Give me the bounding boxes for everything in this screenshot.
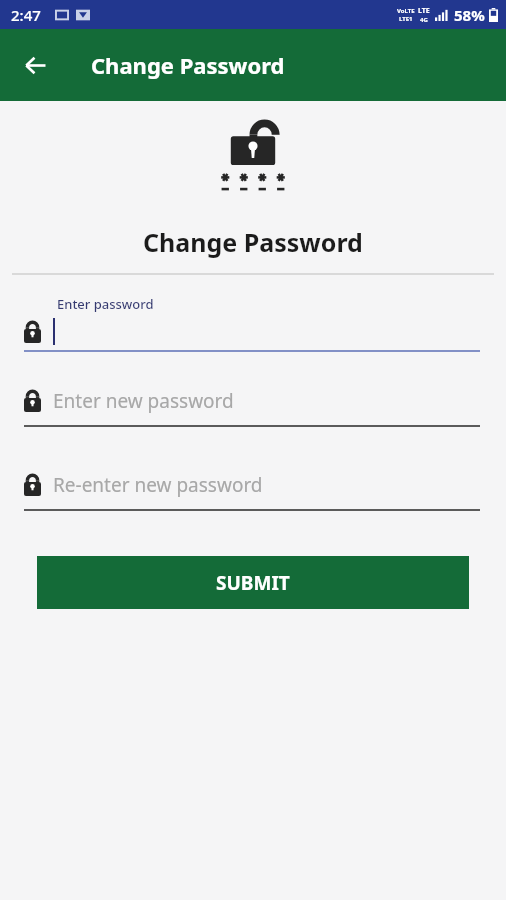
staticText: Enter password xyxy=(57,295,154,313)
button[interactable]: SUBMIT xyxy=(37,556,469,609)
staticText: 4G xyxy=(420,16,428,24)
button[interactable]: Enter password xyxy=(0,295,506,352)
button[interactable]: Re-enter new password xyxy=(0,472,506,511)
staticText: VoLTE xyxy=(397,7,415,15)
staticText: Change Password xyxy=(143,225,363,259)
staticText: LTE xyxy=(418,6,430,16)
staticText: 58% xyxy=(454,5,485,25)
staticText: Enter new password xyxy=(53,388,234,414)
button[interactable]: Back xyxy=(13,43,57,87)
staticText: Re-enter new password xyxy=(53,472,263,498)
staticText: Change Password xyxy=(91,50,285,80)
staticText: SUBMIT xyxy=(216,570,290,596)
staticText: LTE1 xyxy=(399,15,413,23)
button[interactable]: Enter new password xyxy=(0,388,506,427)
staticText: 2:47 xyxy=(11,5,41,25)
